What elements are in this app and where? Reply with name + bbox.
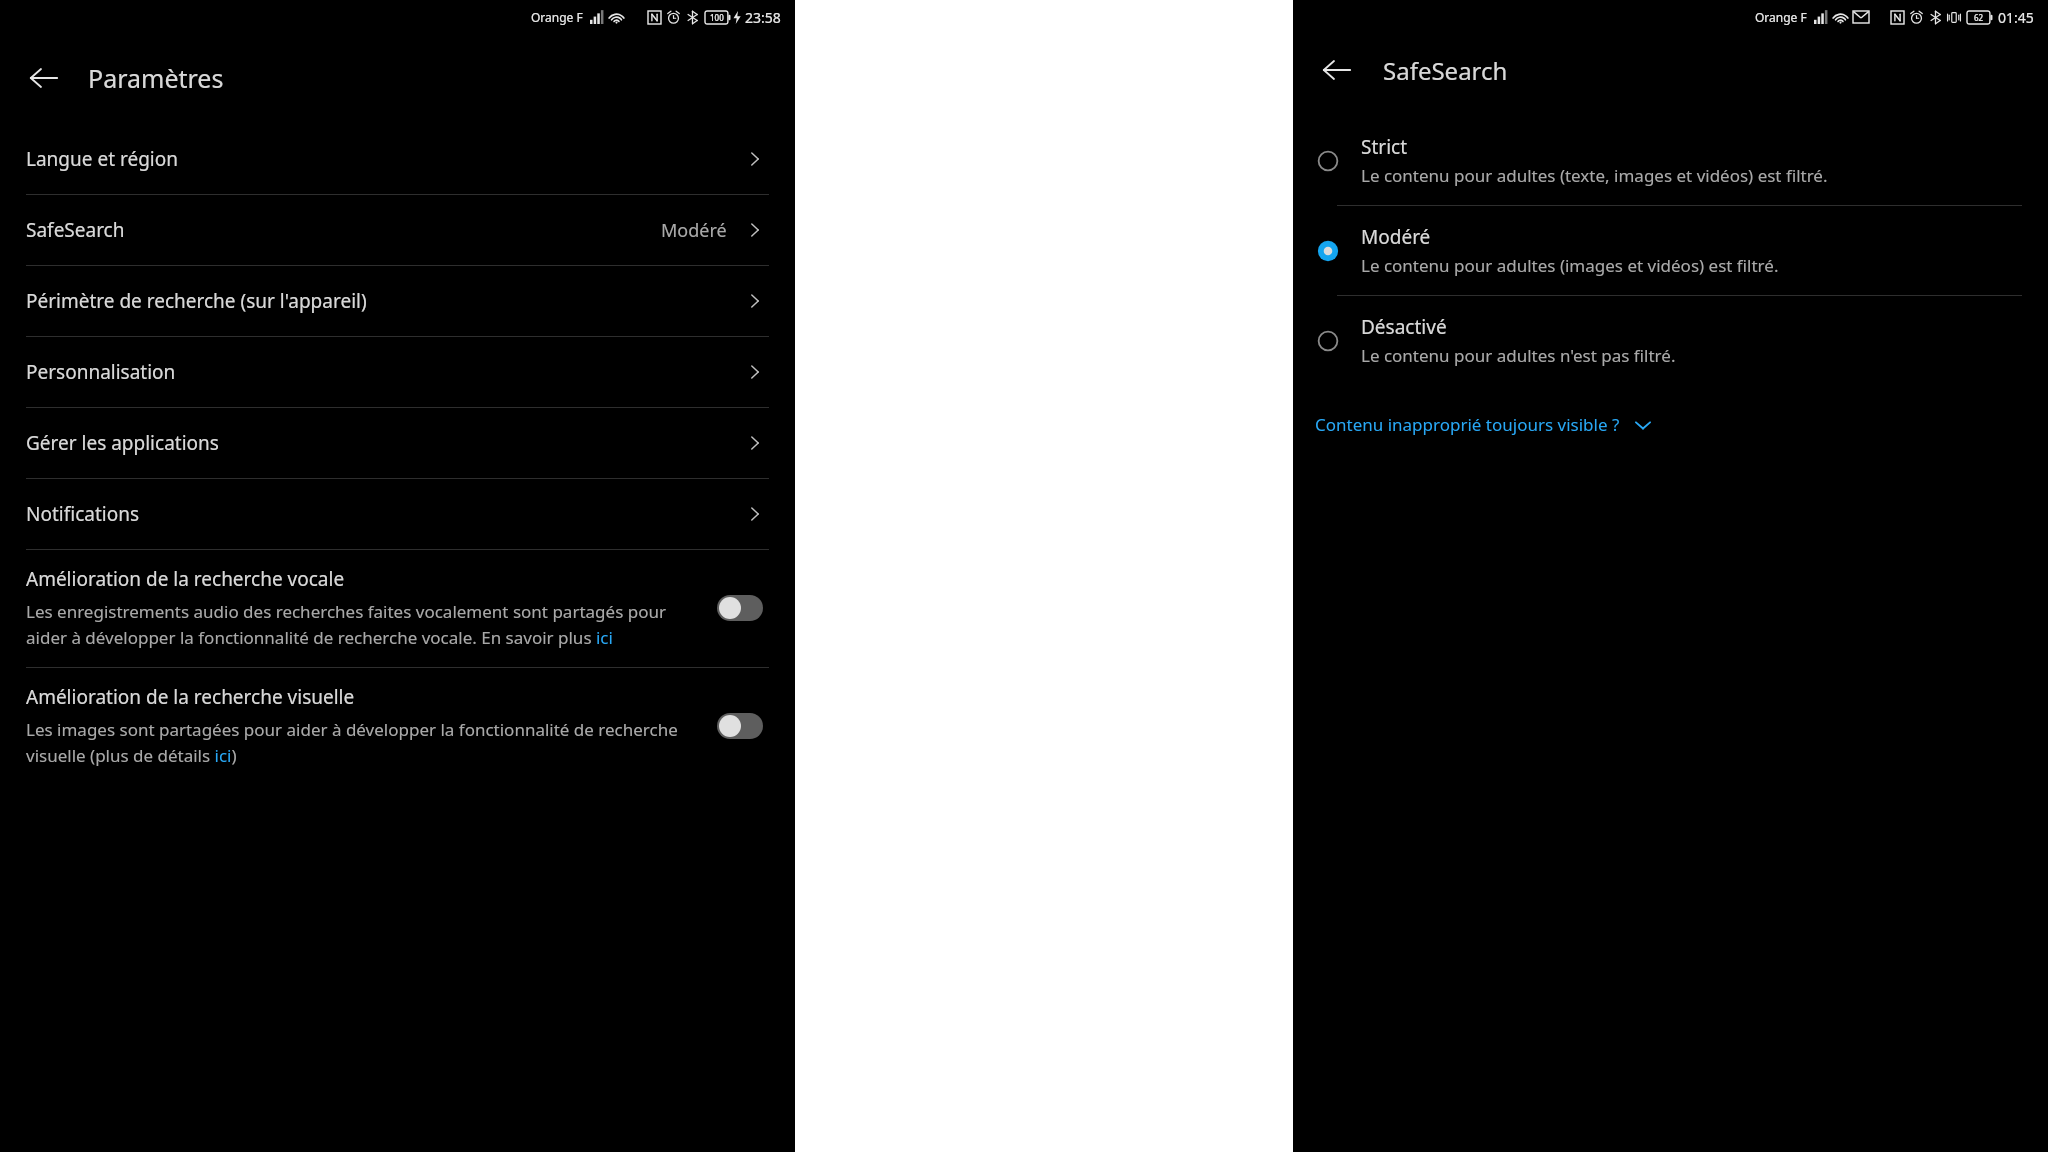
button[interactable]: Notifications xyxy=(26,479,769,549)
staticText: Modéré xyxy=(661,218,727,243)
staticText: Modéré xyxy=(1361,224,1431,250)
button[interactable]: Amélioration de la recherche vocale xyxy=(26,550,769,667)
staticText: Le contenu pour adultes n'est pas filtré… xyxy=(1361,344,1676,367)
staticText: Les images sont partagées pour aider à d… xyxy=(26,718,697,767)
button[interactable]: Désactivé xyxy=(1315,296,2022,385)
button[interactable]: Périmètre de recherche (sur l'appareil) xyxy=(26,266,769,336)
staticText: 62 xyxy=(1974,12,1984,23)
staticText: SafeSearch xyxy=(1383,54,1508,87)
button[interactable]: Toggle xyxy=(717,595,763,621)
button[interactable]: Gérer les applications xyxy=(26,408,769,478)
button[interactable]: Back xyxy=(1315,48,1359,92)
staticText: 100 xyxy=(710,12,724,23)
staticText: 01:45 xyxy=(1998,8,2034,27)
button[interactable]: Langue et région xyxy=(26,124,769,194)
button[interactable]: Personnalisation xyxy=(26,337,769,407)
staticText: Le contenu pour adultes (images et vidéo… xyxy=(1361,254,1779,277)
button[interactable]: Modéré xyxy=(1315,206,2022,295)
staticText: 23:58 xyxy=(745,8,781,27)
staticText: Les enregistrements audio des recherches… xyxy=(26,600,697,649)
staticText: Strict xyxy=(1361,134,1408,160)
button[interactable]: SafeSearch xyxy=(26,195,769,265)
staticText: Paramètres xyxy=(88,61,224,95)
staticText: Personnalisation xyxy=(26,359,176,385)
staticText: Contenu inapproprié toujours visible ? xyxy=(1315,413,1620,436)
staticText: Orange F xyxy=(1755,9,1807,25)
staticText: Désactivé xyxy=(1361,314,1447,340)
staticText: Le contenu pour adultes (texte, images e… xyxy=(1361,164,1828,187)
staticText: Langue et région xyxy=(26,146,178,172)
button[interactable]: Back xyxy=(22,56,66,100)
button[interactable]: Contenu inapproprié toujours visible ? xyxy=(1315,407,1654,442)
staticText: Amélioration de la recherche visuelle xyxy=(26,684,355,710)
button[interactable]: Amélioration de la recherche visuelle xyxy=(26,668,769,785)
button[interactable]: Strict xyxy=(1315,116,2022,205)
staticText: Gérer les applications xyxy=(26,430,219,456)
staticText: Périmètre de recherche (sur l'appareil) xyxy=(26,288,367,314)
staticText: Orange F xyxy=(531,9,583,25)
staticText: Notifications xyxy=(26,501,140,527)
staticText: SafeSearch xyxy=(26,217,125,243)
staticText: Amélioration de la recherche vocale xyxy=(26,566,345,592)
button[interactable]: Toggle xyxy=(717,713,763,739)
